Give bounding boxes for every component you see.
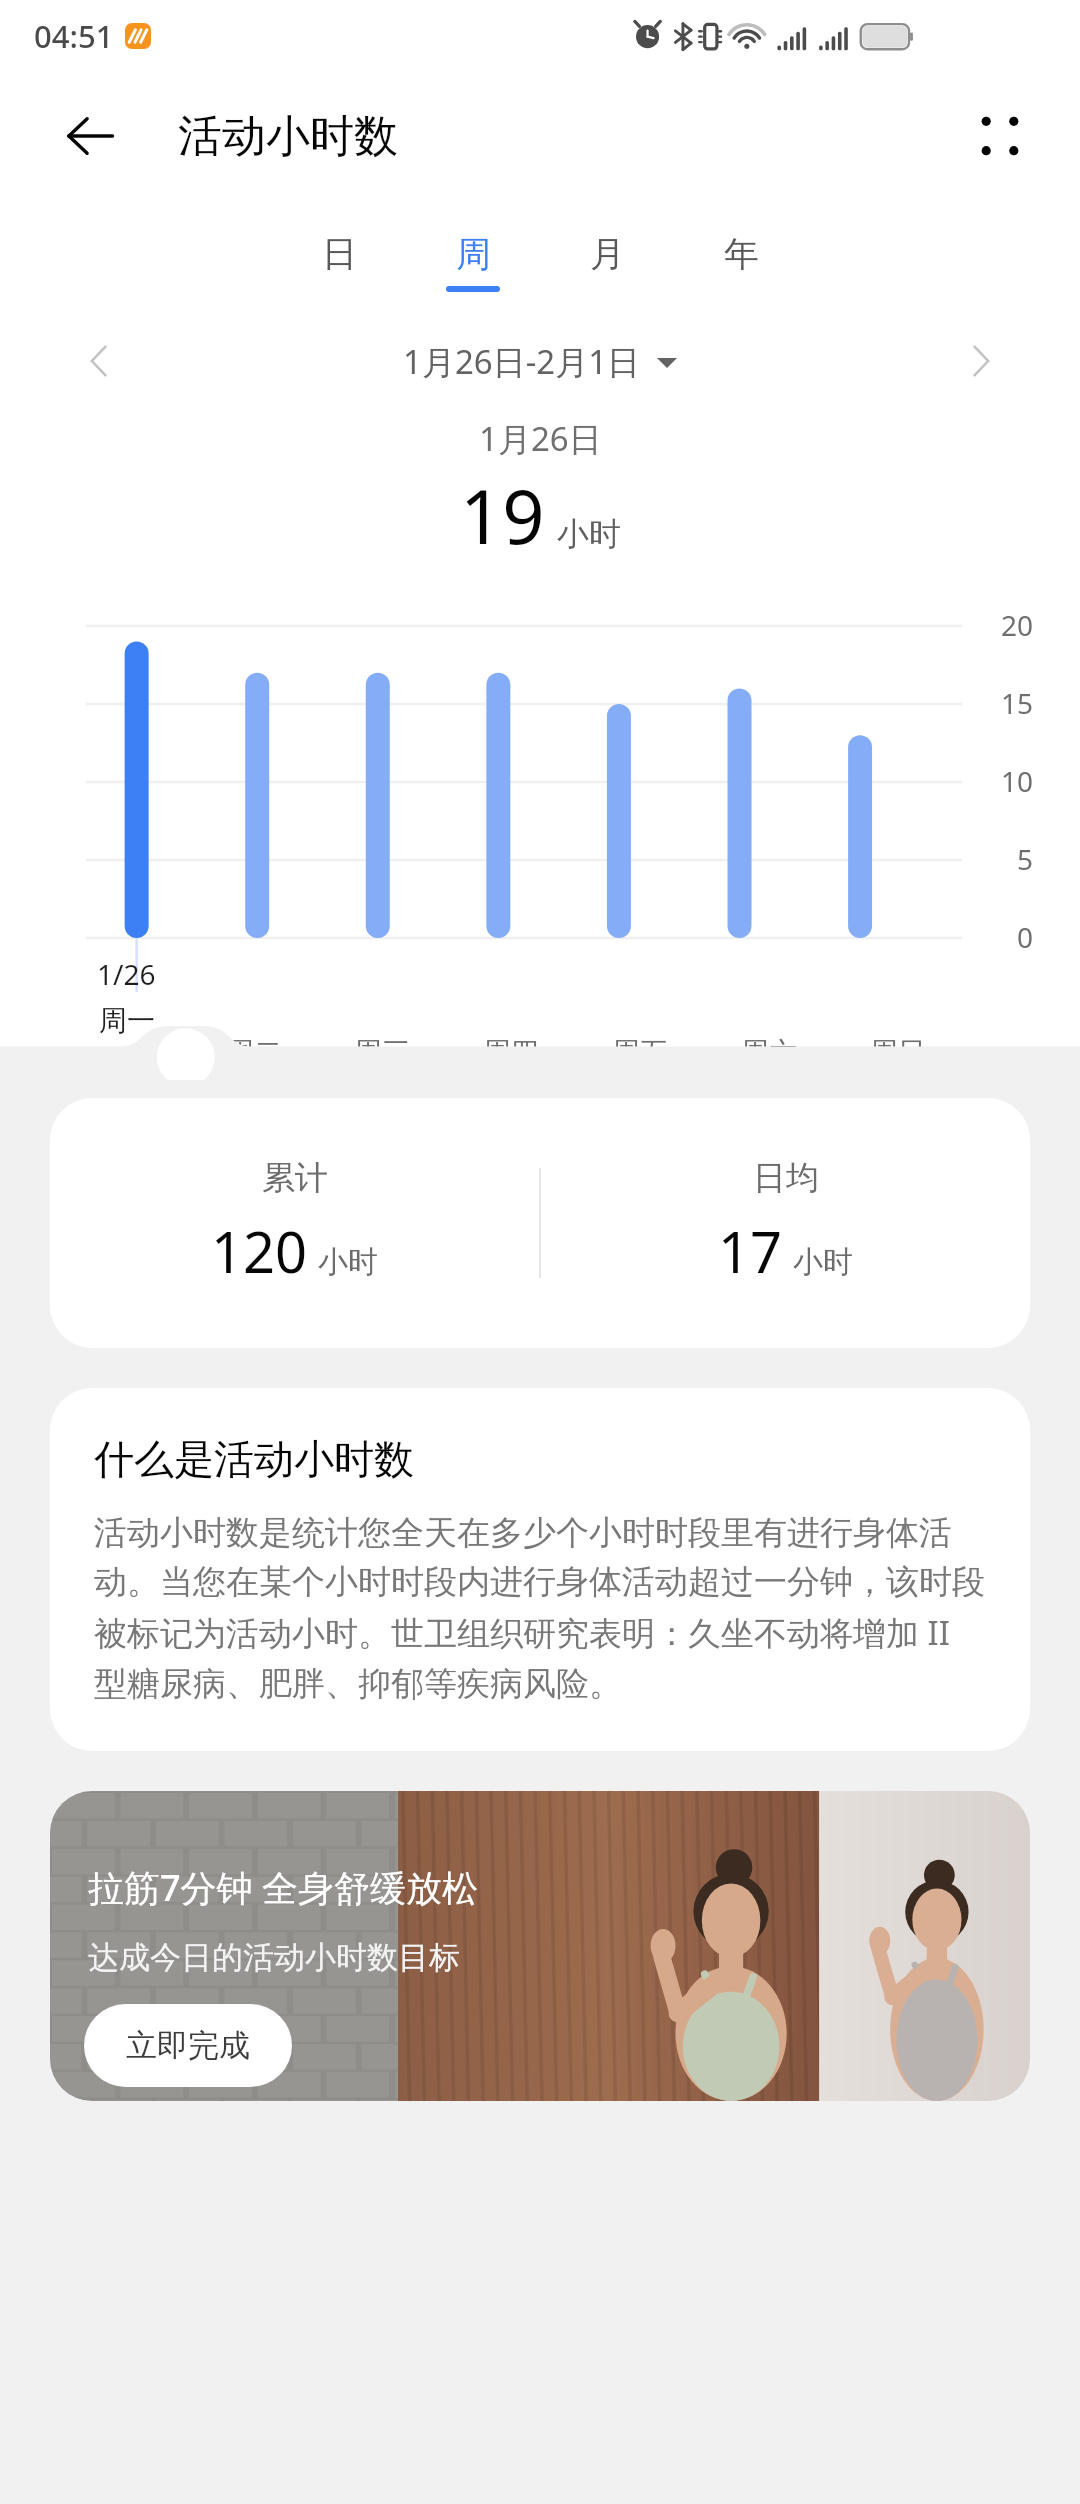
staticText: 04:51 xyxy=(34,15,114,57)
button[interactable]: 周 xyxy=(434,226,512,298)
staticText: 周六 xyxy=(741,1035,797,1070)
staticText: 10 xyxy=(1001,762,1034,800)
staticText: 120 xyxy=(211,1213,308,1289)
staticText: 0 xyxy=(1017,918,1034,956)
staticText: 年 xyxy=(724,232,759,276)
staticText: 小时 xyxy=(318,1243,378,1281)
button[interactable]: 什么是活动小时数 xyxy=(50,1388,1030,1751)
staticText: 15 xyxy=(1001,684,1034,722)
button[interactable]: 立即完成 xyxy=(84,2004,292,2087)
staticText: 周一 xyxy=(99,1003,155,1038)
staticText: 小时 xyxy=(793,1243,853,1281)
staticText: 1月26日-2月1日 xyxy=(403,339,641,384)
staticText: 20 xyxy=(1001,606,1034,644)
staticText: 周 xyxy=(456,232,491,276)
button[interactable]: 日 xyxy=(300,226,378,298)
button[interactable]: 拉筋7分钟 全身舒缓放松 xyxy=(50,1791,1030,2101)
button[interactable]: Next week xyxy=(948,328,1014,394)
staticText: 小时 xyxy=(557,514,621,554)
staticText: 5 xyxy=(1017,840,1034,878)
staticText: 周四 xyxy=(483,1035,539,1070)
staticText: 达成今日的活动小时数目标 xyxy=(88,1938,460,1977)
button[interactable]: 1月26日-2月1日 xyxy=(132,339,948,384)
button[interactable]: 月 xyxy=(568,226,646,298)
button[interactable]: 累计 xyxy=(50,1098,1030,1348)
button[interactable]: More options xyxy=(962,98,1038,174)
staticText: 17 xyxy=(718,1213,783,1289)
staticText: 周三 xyxy=(354,1035,410,1070)
staticText: 活动小时数 xyxy=(178,109,398,164)
staticText: 周日 xyxy=(870,1035,926,1070)
staticText: 19 xyxy=(460,465,545,566)
staticText: 周五 xyxy=(612,1035,668,1070)
staticText: 拉筋7分钟 全身舒缓放松 xyxy=(88,1863,478,1912)
button[interactable]: 年 xyxy=(702,226,780,298)
staticText: 日均 xyxy=(753,1157,819,1199)
button[interactable]: Previous week xyxy=(66,328,132,394)
staticText: 1月26日 xyxy=(479,416,602,461)
staticText: 日 xyxy=(322,232,357,276)
staticText: 累计 xyxy=(262,1157,328,1199)
staticText: 月 xyxy=(590,232,625,276)
staticText: 周二 xyxy=(226,1035,282,1070)
staticText: 什么是活动小时数 xyxy=(94,1434,414,1484)
staticText: 立即完成 xyxy=(126,2026,250,2065)
staticText: 活动小时数是统计您全天在多少个小时时段里有进行身体活动。当您在某个小时时段内进行… xyxy=(94,1512,986,1705)
staticText: 1/26 xyxy=(97,955,156,993)
button[interactable]: Back xyxy=(52,98,128,174)
